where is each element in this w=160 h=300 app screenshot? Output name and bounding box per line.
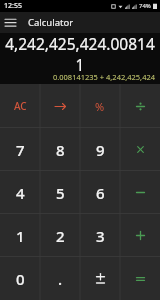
button[interactable]: 0 bbox=[0, 257, 40, 300]
staticText: 1 bbox=[16, 226, 25, 246]
button[interactable]: 5 bbox=[40, 171, 80, 214]
button[interactable]: % bbox=[80, 84, 120, 128]
staticText: % bbox=[95, 99, 105, 114]
staticText: 4,242,425,424.008141 bbox=[5, 33, 155, 72]
button[interactable]: 3 bbox=[80, 214, 120, 257]
staticText: 7 bbox=[16, 140, 25, 160]
staticText: 2 bbox=[56, 226, 65, 246]
button[interactable]: Plus minus sign bbox=[80, 257, 120, 300]
staticText: 5 bbox=[56, 183, 65, 203]
button[interactable]: Multiply bbox=[120, 128, 160, 171]
staticText: AC bbox=[14, 99, 27, 113]
button[interactable]: 8 bbox=[40, 128, 80, 171]
staticText: 6 bbox=[96, 183, 105, 203]
staticText: . bbox=[58, 269, 63, 289]
staticText: 8 bbox=[56, 140, 65, 160]
button[interactable]: Minus bbox=[120, 171, 160, 214]
staticText: 0 bbox=[16, 269, 25, 289]
button[interactable]: 1 bbox=[0, 214, 40, 257]
button[interactable]: 6 bbox=[80, 171, 120, 214]
button[interactable]: . bbox=[40, 257, 80, 300]
button[interactable]: Plus bbox=[120, 214, 160, 257]
button[interactable]: AC bbox=[0, 84, 40, 128]
staticText: Calculator bbox=[28, 16, 74, 29]
button[interactable]: Divide bbox=[120, 84, 160, 128]
button[interactable]: 2 bbox=[40, 214, 80, 257]
button[interactable]: 4 bbox=[0, 171, 40, 214]
staticText: 12:55 bbox=[4, 1, 22, 11]
staticText: 74% bbox=[139, 2, 151, 10]
button[interactable]: Equals bbox=[120, 257, 160, 300]
staticText: 4 bbox=[16, 183, 25, 203]
button[interactable]: 7 bbox=[0, 128, 40, 171]
button[interactable]: 9 bbox=[80, 128, 120, 171]
staticText: 0.008141235 + 4,242,425,424 bbox=[52, 72, 155, 82]
button[interactable]: Backspace bbox=[40, 84, 80, 128]
staticText: 3 bbox=[96, 226, 105, 246]
button[interactable]: Open navigation menu bbox=[0, 12, 21, 33]
staticText: 9 bbox=[96, 140, 105, 160]
